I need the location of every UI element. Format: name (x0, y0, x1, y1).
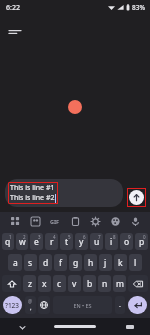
button[interactable]: g (69, 254, 82, 271)
staticText: k (118, 257, 123, 269)
staticText: i (110, 236, 113, 248)
staticText: GIF (50, 218, 60, 225)
button[interactable]: o (120, 233, 133, 250)
staticText: j (104, 257, 107, 269)
staticText: t (65, 236, 69, 248)
staticText: 3 (38, 234, 41, 240)
staticText: l (134, 257, 137, 269)
button[interactable]: m (113, 275, 126, 292)
button[interactable]: Send (129, 190, 144, 205)
button[interactable]: u (90, 233, 103, 250)
button[interactable]: s (24, 254, 37, 271)
button[interactable]: i (105, 233, 118, 250)
staticText: w (19, 236, 26, 248)
staticText: b (87, 278, 93, 290)
staticText: f (59, 257, 62, 269)
staticText: o (124, 236, 130, 248)
staticText: a (13, 257, 18, 269)
button[interactable]: y (75, 233, 88, 250)
staticText: y (79, 236, 84, 248)
staticText: 5 (68, 234, 71, 240)
staticText: EN • ES (73, 302, 92, 309)
staticText: 7 (98, 234, 101, 240)
button[interactable]: r (45, 233, 58, 250)
staticText: g (73, 257, 79, 269)
button[interactable]: x (38, 275, 51, 292)
button[interactable]: k (114, 254, 127, 271)
button[interactable]: e (30, 233, 43, 250)
staticText: n (102, 278, 108, 290)
staticText: r (50, 236, 54, 248)
button[interactable]: l (129, 254, 142, 271)
button[interactable]: z (23, 275, 36, 292)
staticText: This is line #1 (10, 183, 55, 193)
button[interactable]: n (98, 275, 111, 292)
button[interactable]: w (16, 233, 28, 250)
button[interactable]: Change language (38, 296, 50, 314)
staticText: 8 (113, 234, 116, 240)
button[interactable]: c (53, 275, 66, 292)
staticText: 0 (143, 234, 146, 240)
button[interactable]: b (83, 275, 96, 292)
staticText: 4 (53, 234, 56, 240)
staticText: s (28, 257, 33, 269)
staticText: u (94, 236, 100, 248)
button[interactable]: f (54, 254, 67, 271)
button[interactable]: Apps (5, 212, 25, 230)
staticText: @ (28, 298, 33, 304)
button[interactable]: Stickers (25, 212, 45, 230)
button[interactable]: ?123 (3, 296, 22, 314)
staticText: 1 (9, 234, 12, 240)
staticText: e (34, 236, 39, 248)
staticText: 83% (132, 3, 145, 12)
button[interactable]: GIF (45, 212, 65, 230)
button[interactable]: a (8, 254, 22, 271)
staticText: x (42, 278, 47, 290)
staticText: 6:22 (6, 3, 20, 13)
button[interactable]: Menu (4, 21, 26, 43)
button[interactable]: q (2, 233, 14, 250)
staticText: z (28, 278, 32, 290)
staticText: h (88, 257, 94, 269)
staticText: , (30, 304, 32, 312)
button[interactable]: EN • ES (53, 296, 112, 314)
staticText: q (5, 236, 11, 248)
button[interactable]: Clipboard (65, 212, 85, 230)
button[interactable]: v (68, 275, 81, 292)
button[interactable]: Switch keyboard (124, 321, 136, 333)
staticText: m (116, 278, 124, 290)
button[interactable]: Backspace (128, 275, 148, 292)
button[interactable]: h (84, 254, 97, 271)
button[interactable]: . (115, 296, 125, 314)
staticText: p (139, 236, 145, 248)
staticText: c (57, 278, 62, 290)
button[interactable]: d (39, 254, 52, 271)
staticText: 9 (128, 234, 131, 240)
button[interactable]: p (135, 233, 148, 250)
staticText: d (43, 257, 49, 269)
staticText: . (119, 300, 121, 310)
staticText: 6 (83, 234, 86, 240)
button[interactable]: Hide keyboard (16, 321, 28, 333)
staticText: This is line #2 (10, 193, 55, 203)
button[interactable]: t (60, 233, 73, 250)
button[interactable]: Voice input (125, 212, 145, 230)
button[interactable]: This is line #1 (5, 179, 123, 207)
button[interactable]: j (99, 254, 112, 271)
staticText: 2 (23, 234, 26, 240)
button[interactable]: @ (25, 296, 36, 314)
staticText: v (72, 278, 77, 290)
button[interactable]: Shift (2, 275, 21, 292)
button[interactable]: Enter (128, 296, 147, 314)
button[interactable]: Settings (85, 212, 105, 230)
staticText: ?123 (5, 301, 20, 310)
button[interactable]: Home (54, 325, 96, 328)
button[interactable]: Themes (105, 212, 125, 230)
